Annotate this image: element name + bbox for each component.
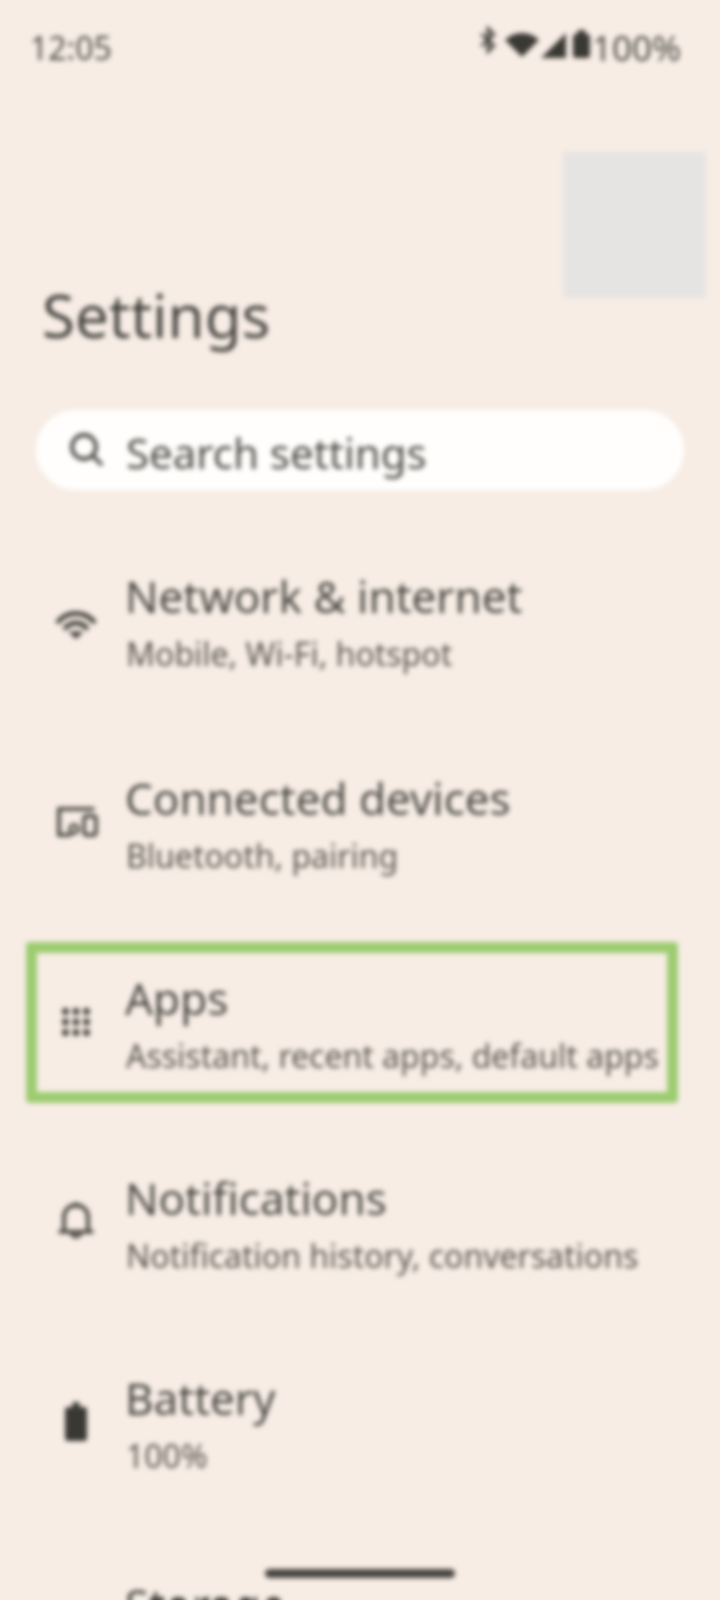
staticText: 100% xyxy=(592,24,682,72)
button[interactable]: Connected devices xyxy=(0,754,720,954)
button[interactable]: Battery xyxy=(0,1354,720,1554)
staticText: 100% xyxy=(126,1434,208,1478)
staticText: Storage xyxy=(125,1574,286,1600)
staticText: Notifications xyxy=(125,1168,387,1228)
staticText: Mobile, Wi-Fi, hotspot xyxy=(126,632,453,676)
staticText: 12:05 xyxy=(30,26,112,70)
button[interactable]: Notifications xyxy=(0,1154,720,1354)
button[interactable]: Apps xyxy=(0,954,720,1154)
staticText: Battery xyxy=(125,1368,276,1428)
staticText: Bluetooth, pairing xyxy=(126,834,399,878)
staticText: Assistant, recent apps, default apps xyxy=(126,1034,659,1078)
button[interactable]: Search settings xyxy=(36,410,684,490)
staticText: Network & internet xyxy=(125,566,523,626)
staticText: Search settings xyxy=(126,424,427,481)
staticText: Apps xyxy=(125,968,229,1028)
button[interactable]: Storage xyxy=(0,1560,720,1600)
button[interactable]: Network & internet xyxy=(0,552,720,752)
staticText: Notification history, conversations xyxy=(126,1234,639,1278)
staticText: Settings xyxy=(42,274,271,356)
staticText: Connected devices xyxy=(125,768,511,828)
